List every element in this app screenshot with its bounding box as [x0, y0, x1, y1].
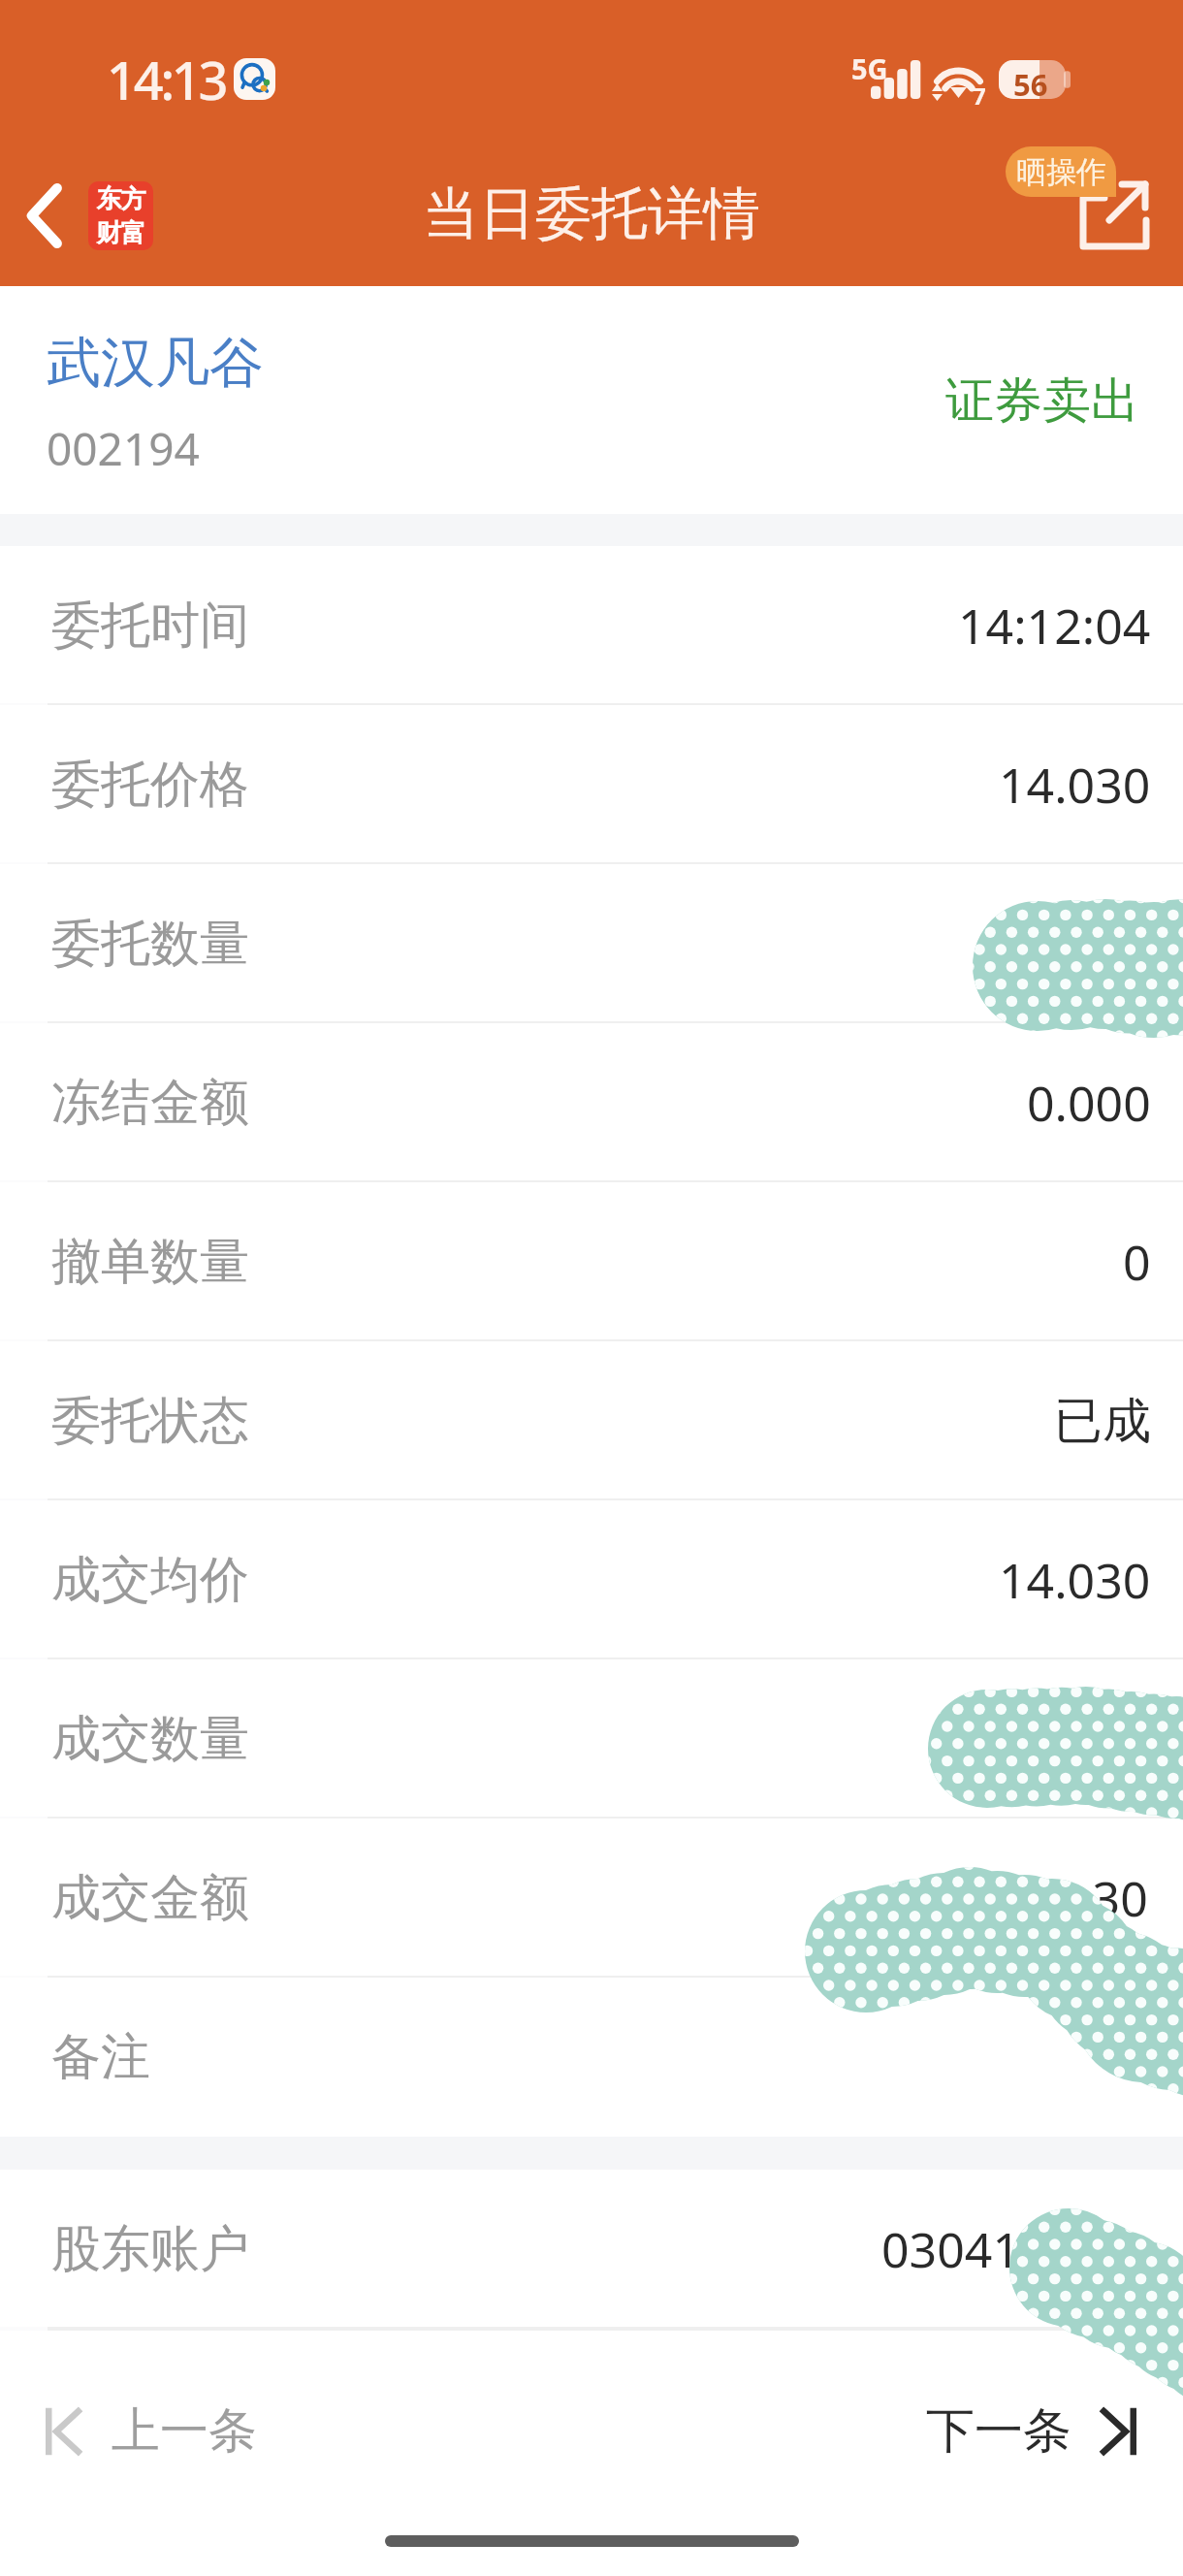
staticText: 14 . 30: [974, 1865, 1148, 1931]
staticText: 已成: [1054, 1391, 1151, 1452]
staticText: 成交数量: [51, 1708, 249, 1770]
button[interactable]: 委托状态: [0, 1341, 1183, 1500]
staticText: 证券卖出: [945, 370, 1139, 432]
staticText: 财富: [97, 217, 145, 249]
button[interactable]: 委托数量: [0, 864, 1183, 1023]
staticText: 撤单数量: [51, 1231, 249, 1293]
staticText: 0.000: [1027, 1070, 1151, 1136]
button[interactable]: 冻结金额: [0, 1023, 1183, 1182]
button[interactable]: Back: [0, 136, 95, 286]
button[interactable]: 上一条: [46, 2400, 257, 2462]
staticText: 56: [1013, 64, 1048, 105]
button[interactable]: 委托时间: [0, 546, 1183, 705]
staticText: 14.030: [999, 1547, 1151, 1613]
staticText: 0: [1123, 1229, 1151, 1295]
staticText: 5G: [851, 49, 888, 87]
staticText: 委托状态: [51, 1390, 249, 1452]
staticText: 03041: [881, 2216, 1020, 2282]
staticText: 成交均价: [51, 1549, 249, 1611]
staticText: 002194: [47, 418, 200, 479]
staticText: 东方: [97, 183, 145, 215]
button[interactable]: 成交均价: [0, 1500, 1183, 1659]
button[interactable]: 股东账户: [0, 2170, 1183, 2329]
button[interactable]: 备注: [0, 1978, 1183, 2137]
staticText: 7: [973, 80, 986, 112]
staticText: 委托数量: [51, 913, 249, 975]
button[interactable]: 成交数量: [0, 1659, 1183, 1819]
staticText: 上一条: [112, 2400, 257, 2462]
button[interactable]: 成交金额: [0, 1819, 1183, 1978]
staticText: 14.030: [999, 752, 1151, 818]
staticText: 晒操作: [1016, 153, 1106, 191]
button[interactable]: 委托价格: [0, 705, 1183, 864]
staticText: 14:13: [107, 44, 226, 115]
staticText: 武汉凡谷: [47, 329, 264, 398]
staticText: 股东账户: [51, 2218, 249, 2280]
staticText: 14:12:04: [958, 593, 1151, 659]
button[interactable]: 撤单数量: [0, 1182, 1183, 1341]
staticText: 委托时间: [51, 595, 249, 657]
staticText: 成交金额: [51, 1867, 249, 1929]
staticText: 下一条: [926, 2400, 1071, 2462]
staticText: 冻结金额: [51, 1072, 249, 1134]
button[interactable]: Share: [1004, 136, 1183, 286]
staticText: 备注: [51, 2026, 150, 2088]
staticText: 委托价格: [51, 754, 249, 816]
staticText: 当日委托详情: [423, 178, 760, 249]
button[interactable]: 下一条: [926, 2400, 1136, 2462]
